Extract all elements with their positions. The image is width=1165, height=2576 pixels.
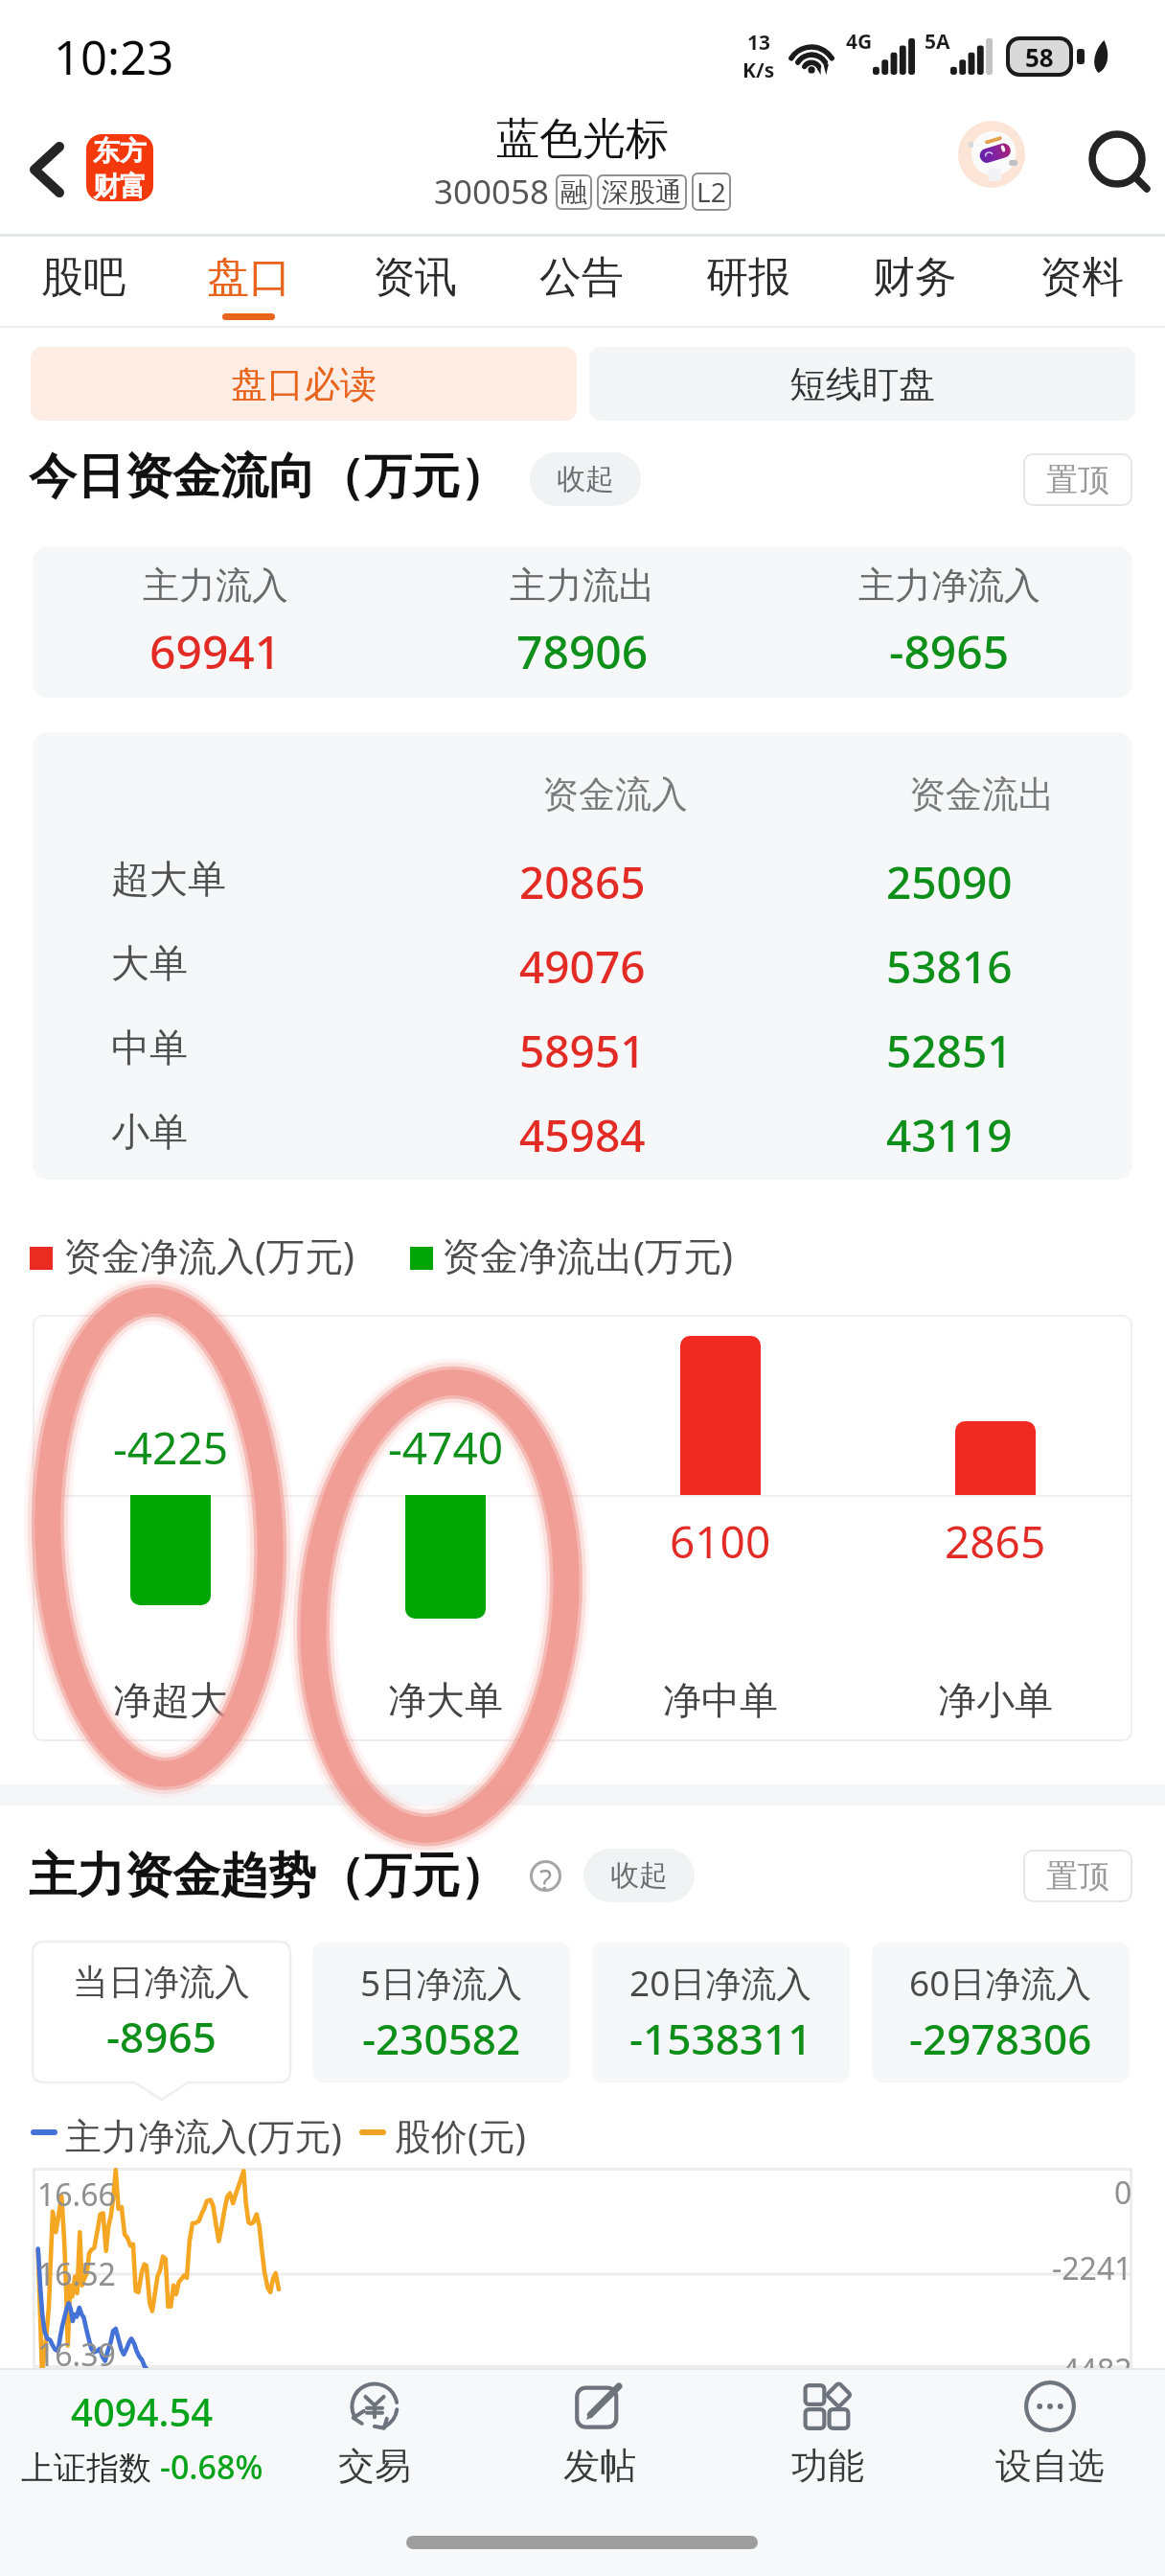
staticText: -2241 [1052,2247,1132,2289]
staticText: 78906 [516,620,649,682]
staticText: 净超大 [113,1676,228,1724]
staticText: 25090 [886,852,1013,912]
staticText: -4225 [113,1417,229,1478]
staticText: -8965 [106,2008,217,2065]
button[interactable]: AI assistant [958,121,1025,188]
button[interactable]: 4094.54 [0,2385,286,2489]
staticText: 资金净流入(万元) [63,1229,354,1281]
staticText: 主力资金趋势（万元） [29,1846,508,1906]
staticText: 20865 [519,852,646,912]
staticText: 研报 [706,251,790,304]
staticText: 49076 [519,936,646,997]
staticText: 60日净流入 [909,1958,1092,2007]
staticText: 主力净流入(万元) [65,2110,342,2160]
button[interactable]: 短线盯盘 [589,347,1135,421]
staticText: 收起 [610,1857,668,1894]
staticText: 20日净流入 [629,1958,812,2007]
staticText: 2865 [945,1511,1046,1572]
staticText: 上证指数 [21,2445,160,2489]
staticText: 主力净流入 [858,563,1040,609]
staticText: 10:23 [54,25,174,89]
staticText: 13 [747,29,771,57]
staticText: -0.68% [160,2445,263,2489]
staticText: 45984 [519,1105,646,1165]
staticText: 主力流出 [510,563,655,609]
staticText: 资金净流出(万元) [442,1229,733,1281]
button[interactable]: 研报 [665,237,832,326]
staticText: 净中单 [663,1676,778,1724]
staticText: -1538311 [629,2010,812,2067]
staticText: 短线盯盘 [789,361,935,407]
staticText: 盘口必读 [231,361,377,407]
button[interactable]: 收起 [530,452,641,506]
staticText: 16.39 [37,2334,116,2376]
button[interactable]: 设自选 [933,2378,1165,2489]
staticText: 中单 [111,1023,188,1071]
button[interactable]: 20日净流入 [592,1942,850,2082]
staticText: 69941 [149,620,282,682]
staticText: 5日净流入 [360,1958,523,2007]
staticText: 收起 [557,461,614,497]
staticText: 主力流入 [143,563,288,609]
button[interactable]: 股吧 [0,237,166,326]
button[interactable]: 5日净流入 [312,1942,570,2082]
staticText: 资料 [1039,251,1124,304]
staticText: 43119 [886,1105,1013,1165]
staticText: 蓝色光标 [496,112,669,167]
staticText: 置顶 [1046,1856,1109,1897]
button[interactable]: 置顶 [1023,1850,1132,1902]
staticText: 股价(元) [395,2110,526,2160]
staticText: L2 [697,173,726,210]
staticText: 300058 [434,169,550,215]
button[interactable]: Help [530,1860,561,1892]
button[interactable]: 财务 [832,237,998,326]
button[interactable]: 资料 [998,237,1165,326]
staticText: 资金流入 [542,771,688,817]
staticText: 财富 [93,170,147,201]
staticText: 净小单 [938,1676,1053,1724]
staticText: 超大单 [111,855,226,903]
button[interactable]: Back [3,126,91,214]
staticText: 深股通 [602,175,682,209]
button[interactable]: 资讯 [331,237,498,326]
staticText: -230582 [362,2010,521,2067]
staticText: 52851 [886,1021,1013,1081]
staticText: 4G [846,28,873,56]
staticText: 今日资金流向（万元） [29,447,508,507]
button[interactable]: 盘口 [166,237,331,326]
staticText: 设自选 [995,2443,1105,2489]
staticText: 58951 [519,1021,646,1081]
staticText: -8965 [889,620,1010,682]
staticText: 资讯 [373,251,457,304]
button[interactable]: 发帖 [483,2378,717,2489]
button[interactable]: East Money [86,134,153,201]
button[interactable]: 置顶 [1023,453,1132,506]
staticText: 东方 [93,134,147,168]
staticText: 0 [1114,2172,1132,2214]
button[interactable]: 公告 [498,237,665,326]
button[interactable]: 盘口必读 [31,347,577,421]
staticText: -2978306 [909,2010,1092,2067]
staticText: 股吧 [41,251,126,304]
staticText: 净大单 [388,1676,503,1724]
staticText: 4094.54 [71,2385,214,2437]
staticText: 5A [925,28,950,56]
button[interactable]: Search [1066,109,1154,197]
staticText: -4482 [1052,2349,1132,2391]
staticText: 财务 [873,251,957,304]
staticText: 小单 [111,1108,188,1156]
staticText: 16.66 [37,2173,116,2216]
staticText: 交易 [338,2443,411,2489]
staticText: 大单 [111,939,188,987]
button[interactable]: 功能 [711,2378,945,2489]
staticText: 盘口 [207,251,291,304]
button[interactable]: 当日净流入 [33,1942,290,2082]
button[interactable]: 交易 [258,2378,491,2489]
button[interactable]: 收起 [583,1849,695,1902]
button[interactable]: 60日净流入 [872,1942,1130,2082]
staticText: 融 [560,175,587,209]
staticText: 功能 [791,2443,864,2489]
staticText: 58 [1025,40,1054,73]
staticText: 发帖 [563,2443,636,2489]
staticText: 当日净流入 [73,1960,250,2005]
